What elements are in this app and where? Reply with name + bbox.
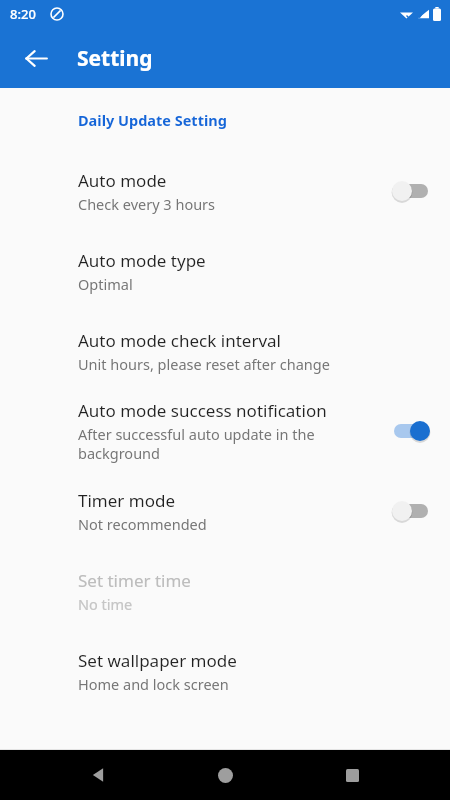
button[interactable]: Auto mode bbox=[0, 151, 450, 231]
staticText: Auto mode type bbox=[78, 249, 206, 272]
staticText: Optimal bbox=[78, 274, 133, 294]
staticText: Home and lock screen bbox=[78, 674, 229, 694]
staticText: Daily Update Setting bbox=[78, 110, 227, 130]
staticText: Set timer time bbox=[78, 569, 191, 592]
staticText: Check every 3 hours bbox=[78, 194, 216, 214]
button[interactable]: Toggle on bbox=[388, 414, 434, 448]
button[interactable]: Auto mode check interval bbox=[0, 311, 450, 391]
staticText: Setting bbox=[77, 44, 153, 73]
staticText: Auto mode check interval bbox=[78, 329, 281, 352]
button[interactable]: Home bbox=[205, 755, 245, 795]
button[interactable]: Auto mode success notification bbox=[0, 391, 450, 471]
staticText: Timer mode bbox=[78, 489, 175, 512]
button[interactable]: Recents bbox=[332, 755, 372, 795]
button[interactable]: Timer mode bbox=[0, 471, 450, 551]
staticText: Auto mode success notification bbox=[78, 399, 327, 422]
staticText: Unit hours, please reset after change bbox=[78, 354, 330, 374]
staticText: 8:20 bbox=[10, 5, 36, 23]
button[interactable]: Back bbox=[78, 755, 118, 795]
staticText: Not recommended bbox=[78, 514, 207, 534]
button[interactable]: Set wallpaper mode bbox=[0, 631, 450, 711]
staticText: Auto mode bbox=[78, 169, 167, 192]
button[interactable]: Toggle off bbox=[388, 174, 434, 208]
button[interactable]: Toggle off bbox=[388, 494, 434, 528]
button[interactable]: Back bbox=[12, 34, 60, 82]
staticText: After successful auto update in the back… bbox=[78, 424, 376, 463]
button[interactable]: Set timer time bbox=[0, 551, 450, 631]
staticText: No time bbox=[78, 594, 133, 614]
button[interactable]: Auto mode type bbox=[0, 231, 450, 311]
staticText: Set wallpaper mode bbox=[78, 649, 237, 672]
